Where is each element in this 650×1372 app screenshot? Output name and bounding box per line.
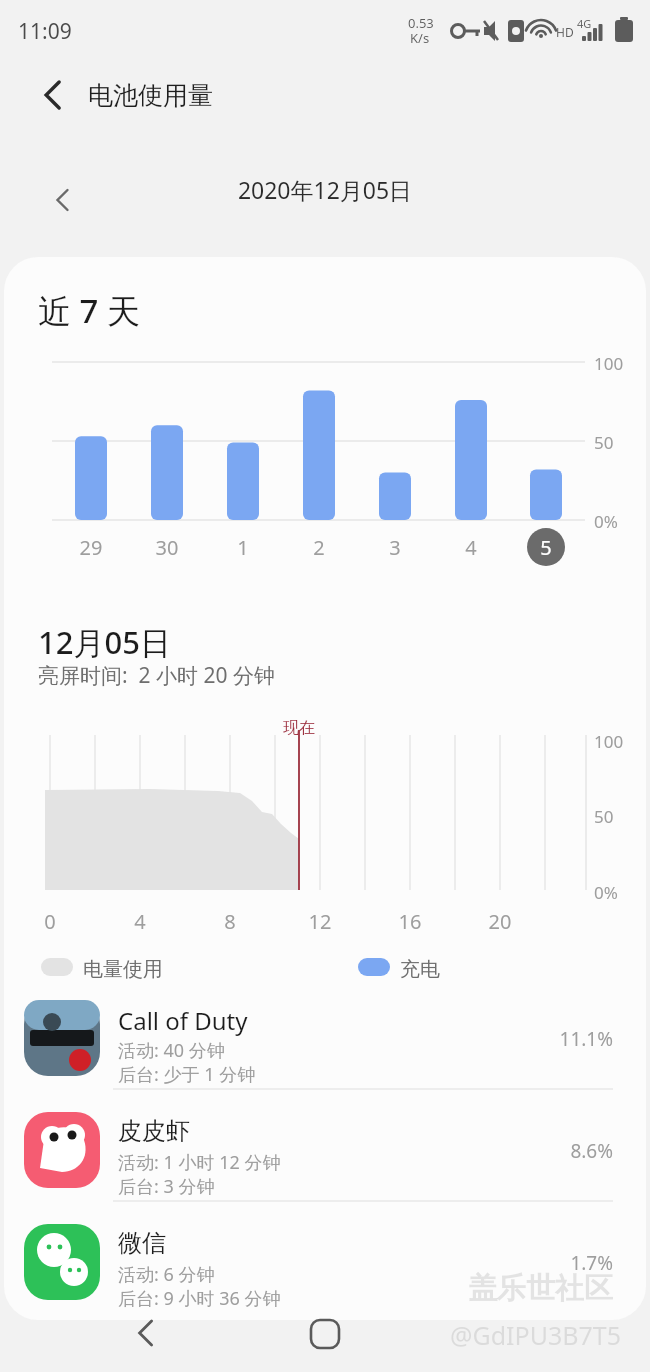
staticText: 亮屏时间: 2 小时 20 分钟 <box>38 661 275 690</box>
staticText: 8.6% <box>453 1138 613 1167</box>
staticText: 16 <box>380 908 440 938</box>
staticText: Call of Duty <box>118 1004 248 1037</box>
staticText: 11:09 <box>18 17 72 46</box>
staticText: 4G <box>577 16 592 31</box>
staticText: 12月05日 <box>38 621 171 663</box>
staticText: 5 <box>516 534 576 564</box>
staticText: 2 <box>289 534 349 564</box>
staticText: 50 <box>594 805 614 828</box>
staticText: 30 <box>137 534 197 564</box>
staticText: 现在 <box>259 718 339 742</box>
staticText: @GdIPU3B7T5 <box>450 1318 621 1352</box>
staticText: 0% <box>594 881 618 904</box>
button[interactable] <box>4 1214 624 1310</box>
staticText: 12 <box>290 908 350 938</box>
staticText: 4 <box>441 534 501 564</box>
button[interactable]: Previous day <box>30 172 96 228</box>
staticText: 后台: 3 分钟 <box>118 1174 215 1199</box>
staticText: 0% <box>594 510 618 533</box>
staticText: 0.53 <box>408 14 434 32</box>
button[interactable] <box>4 990 624 1090</box>
staticText: 活动: 1 小时 12 分钟 <box>118 1150 281 1175</box>
button[interactable] <box>4 1102 624 1202</box>
staticText: K/s <box>410 29 430 47</box>
button[interactable]: Back <box>100 1306 200 1362</box>
staticText: 皮皮虾 <box>118 1116 190 1146</box>
staticText: 20 <box>470 908 530 938</box>
staticText: 2020年12月05日 <box>175 174 475 209</box>
staticText: 电池使用量 <box>88 80 213 111</box>
staticText: 1 <box>213 534 273 564</box>
staticText: 29 <box>61 534 121 564</box>
staticText: 电量使用 <box>83 957 163 982</box>
staticText: 8 <box>200 908 260 938</box>
staticText: 4 <box>110 908 170 938</box>
staticText: 充电 <box>400 957 440 982</box>
staticText: 微信 <box>118 1228 166 1258</box>
staticText: 50 <box>594 431 614 454</box>
staticText: 1.7% <box>453 1250 613 1279</box>
staticText: 3 <box>365 534 425 564</box>
staticText: 近 7 天 <box>38 288 141 333</box>
staticText: HD <box>556 24 574 40</box>
staticText: 100 <box>594 352 624 375</box>
staticText: 后台: 少于 1 分钟 <box>118 1062 256 1087</box>
staticText: 盖乐世社区 <box>468 1270 613 1307</box>
button[interactable]: Back <box>18 68 90 128</box>
staticText: 活动: 6 分钟 <box>118 1262 215 1287</box>
staticText: 11.1% <box>453 1026 613 1055</box>
button[interactable]: Home <box>275 1306 375 1362</box>
staticText: 100 <box>594 730 624 753</box>
staticText: 活动: 40 分钟 <box>118 1038 225 1063</box>
staticText: 0 <box>20 908 80 938</box>
staticText: 后台: 9 小时 36 分钟 <box>118 1286 281 1311</box>
